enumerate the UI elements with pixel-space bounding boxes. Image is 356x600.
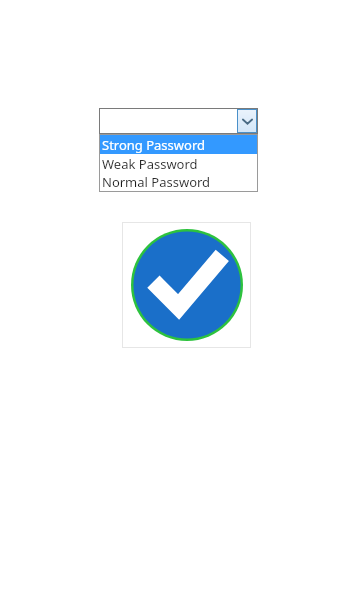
button[interactable]: Strong Password [100, 135, 257, 154]
button[interactable]: Normal Password [100, 173, 257, 191]
button[interactable]: Open dropdown [237, 109, 257, 133]
staticText: Normal Password [102, 173, 211, 191]
staticText: Weak Password [102, 155, 198, 173]
staticText: Strong Password [102, 136, 206, 154]
button[interactable]: Weak Password [100, 154, 257, 173]
button[interactable]: Open dropdown [99, 108, 258, 134]
other: Success check mark [131, 229, 243, 341]
